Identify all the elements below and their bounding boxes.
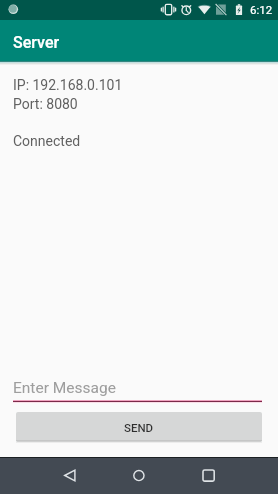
button[interactable]: Back xyxy=(0,458,92,494)
button[interactable]: Recents xyxy=(185,458,278,494)
button[interactable]: SEND xyxy=(16,412,262,442)
staticText: Enter Message xyxy=(13,379,116,397)
staticText: SEND xyxy=(124,421,154,434)
staticText: 6:12 xyxy=(250,3,273,16)
button[interactable]: Enter Message xyxy=(13,379,262,403)
button[interactable]: Home xyxy=(92,458,185,494)
staticText: IP: 192.168.0.101 xyxy=(13,77,123,93)
staticText: Server xyxy=(13,33,60,52)
staticText: Connected xyxy=(13,133,81,149)
staticText: Port: 8080 xyxy=(13,96,78,112)
